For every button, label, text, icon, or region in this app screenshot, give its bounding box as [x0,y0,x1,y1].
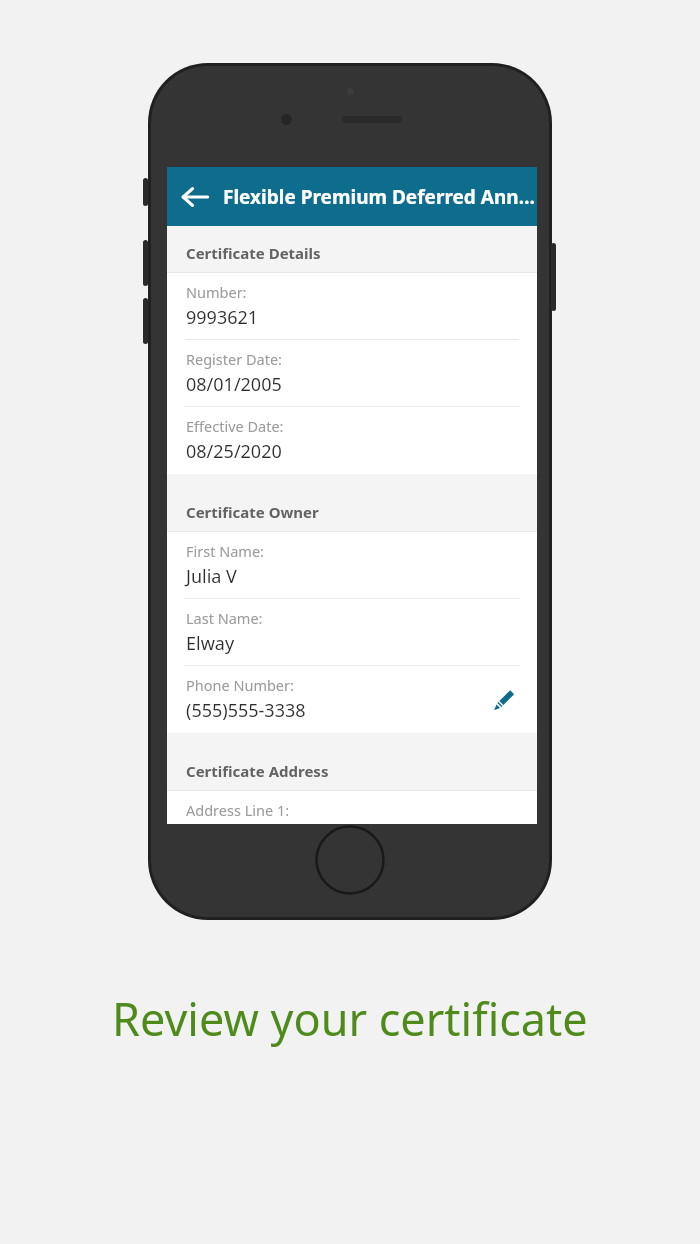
staticText: Phone Number: [186,675,294,695]
staticText: 08/25/2020 [186,439,282,464]
staticText: Elway [186,631,235,656]
button[interactable]: Phone Number: [167,666,537,733]
staticText: Register Date: [186,349,282,369]
button[interactable]: Last Name: [167,599,537,666]
button[interactable]: First Name: [167,532,537,599]
button[interactable]: Effective Date: [167,407,537,474]
staticText: Certificate Details [186,243,321,263]
staticText: Last Name: [186,608,263,628]
button[interactable]: Number: [167,273,537,340]
staticText: Flexible Premium Deferred Ann… [223,184,535,210]
staticText: 08/01/2005 [186,372,282,397]
staticText: First Name: [186,541,264,561]
staticText: Review your certificate [112,988,588,1049]
staticText: 9993621 [186,305,259,330]
button[interactable]: Edit phone number [487,683,521,717]
staticText: Number: [186,282,247,302]
staticText: (555)555-3338 [186,698,306,723]
staticText: Certificate Address [186,761,329,781]
staticText: Address Line 1: [186,800,290,820]
staticText: Certificate Owner [186,502,319,522]
button[interactable]: Register Date: [167,340,537,407]
button[interactable]: Back [167,167,223,226]
staticText: Effective Date: [186,416,284,436]
staticText: Julia V [186,564,237,589]
